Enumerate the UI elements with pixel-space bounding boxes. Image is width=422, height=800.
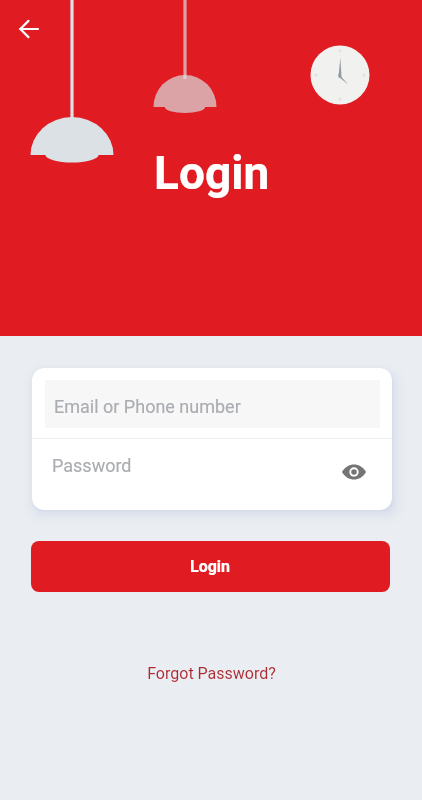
- staticText: Email or Phone number: [54, 396, 241, 417]
- button[interactable]: Forgot Password?: [137, 659, 286, 688]
- button[interactable]: Show password: [338, 456, 370, 488]
- button[interactable]: Email or Phone number: [32, 368, 392, 438]
- button[interactable]: Login: [31, 541, 390, 592]
- staticText: Forgot Password?: [147, 664, 276, 683]
- staticText: Login: [190, 557, 231, 576]
- staticText: Login: [154, 146, 270, 200]
- button[interactable]: Password: [32, 439, 392, 510]
- staticText: Password: [52, 455, 132, 476]
- button[interactable]: Back: [11, 11, 47, 47]
